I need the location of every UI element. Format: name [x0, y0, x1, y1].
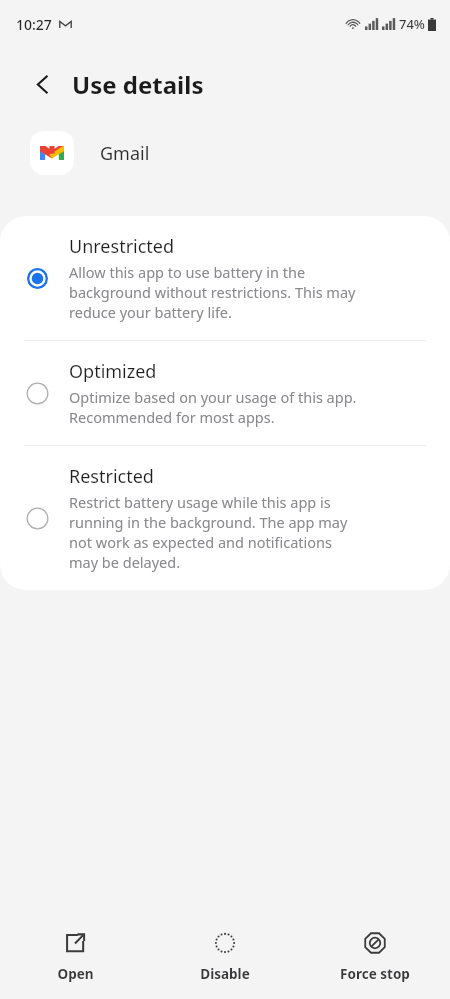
staticText: Use details [72, 68, 204, 101]
button[interactable]: Optimized [0, 341, 450, 445]
staticText: Allow this app to use battery in the bac… [69, 262, 356, 322]
staticText: Disable [200, 965, 250, 983]
staticText: Open [57, 965, 94, 983]
staticText: 10:27 [16, 15, 52, 34]
button[interactable]: Back [20, 62, 64, 106]
button[interactable]: Force stop [300, 903, 450, 999]
staticText: Optimize based on your usage of this app… [69, 387, 357, 427]
button[interactable]: Restricted [0, 446, 450, 590]
staticText: Restricted [69, 464, 154, 489]
staticText: Unrestricted [69, 234, 175, 259]
staticText: Optimized [69, 359, 157, 384]
staticText: Restrict battery usage while this app is… [69, 492, 348, 572]
staticText: 74% [399, 15, 425, 33]
button[interactable]: Open [0, 903, 150, 999]
staticText: Gmail [100, 141, 150, 166]
button[interactable]: Disable [150, 903, 300, 999]
staticText: Force stop [340, 965, 410, 983]
button[interactable]: Unrestricted [0, 216, 450, 340]
